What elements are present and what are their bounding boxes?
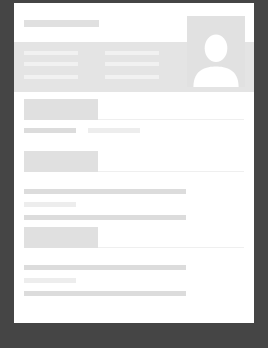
button[interactable]: Profile photo xyxy=(187,16,245,87)
